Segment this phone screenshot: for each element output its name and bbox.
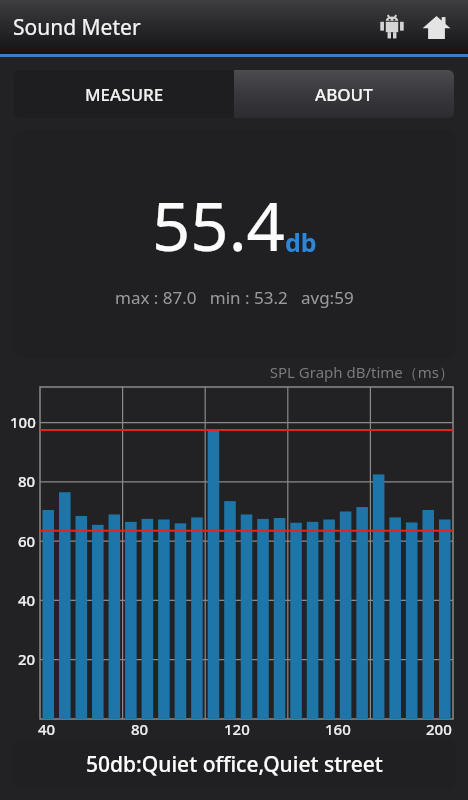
staticText: ABOUT (315, 83, 373, 106)
staticText: 50db:Quiet office,Quiet street (86, 750, 383, 779)
button[interactable]: 55.4 (12, 130, 456, 358)
staticText: SPL Graph dB/time（ms） (0, 362, 454, 382)
button[interactable]: Android apps (370, 5, 414, 49)
staticText: max : 87.0 min : 53.2 avg:59 (115, 286, 354, 309)
staticText: MEASURE (85, 83, 164, 106)
staticText: 40 (18, 590, 36, 610)
staticText: 80 (131, 719, 149, 739)
staticText: 200 (426, 719, 452, 739)
staticText: 20 (18, 649, 36, 669)
staticText: 80 (18, 471, 36, 491)
button[interactable]: 50db:Quiet office,Quiet street (12, 739, 456, 789)
staticText: 40 (38, 719, 56, 739)
staticText: db (285, 225, 317, 259)
staticText: 160 (325, 719, 351, 739)
button[interactable]: ABOUT (234, 70, 454, 118)
staticText: 60 (18, 531, 36, 551)
staticText: 120 (224, 719, 250, 739)
staticText: 100 (10, 412, 36, 432)
button[interactable]: Home (414, 5, 458, 49)
button[interactable]: MEASURE (14, 70, 234, 118)
staticText: 55.4 (152, 179, 285, 270)
staticText: Sound Meter (13, 13, 141, 42)
